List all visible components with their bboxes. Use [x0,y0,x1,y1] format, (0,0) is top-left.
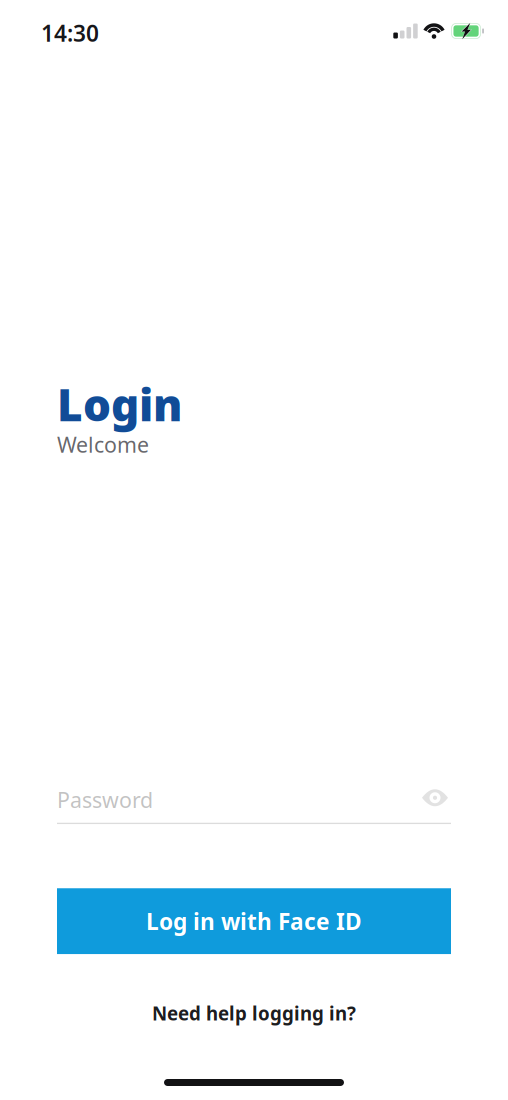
staticText: Login [57,375,182,433]
button[interactable]: Log in with Face ID [57,888,451,954]
staticText: Need help logging in? [152,1001,356,1026]
button[interactable]: Need help logging in? [0,996,508,1030]
staticText: Password [57,786,153,814]
staticText: Log in with Face ID [146,906,362,936]
staticText: Welcome [57,430,149,459]
staticText: 14:30 [41,18,99,48]
button[interactable]: Show password [417,784,451,816]
